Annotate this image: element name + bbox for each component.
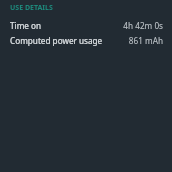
staticText: USE DETAILS (10, 3, 53, 13)
button[interactable]: Time on (0, 18, 172, 33)
staticText: 861 mAh (107, 35, 163, 46)
staticText: 4h 42m 0s (46, 20, 163, 31)
button[interactable]: Computed power usage (0, 33, 172, 48)
staticText: Computed power usage (10, 35, 103, 46)
staticText: Time on (10, 20, 42, 31)
